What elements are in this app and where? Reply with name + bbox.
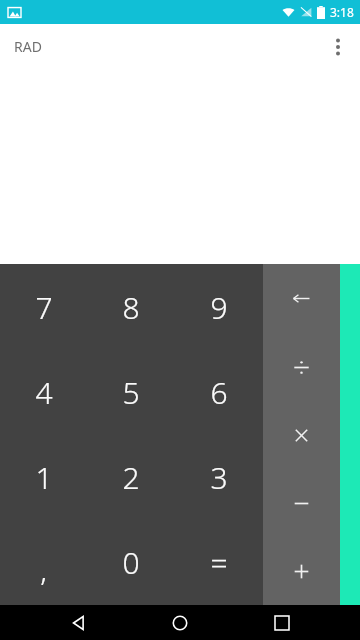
staticText: 5 <box>122 372 140 413</box>
staticText: 3 <box>210 457 228 498</box>
button[interactable]: More options <box>316 25 360 69</box>
button[interactable]: = <box>175 520 263 605</box>
button[interactable]: Divide <box>263 333 340 401</box>
button[interactable]: RAD <box>0 31 56 62</box>
staticText: 0 <box>122 542 140 583</box>
staticText: 2 <box>122 457 140 498</box>
staticText: , <box>40 549 47 590</box>
button[interactable]: 7 <box>0 264 87 350</box>
button[interactable]: 0 <box>87 520 175 605</box>
button[interactable]: 2 <box>87 435 175 520</box>
staticText: RAD <box>14 37 42 56</box>
button[interactable]: , <box>0 520 87 605</box>
button[interactable]: Home <box>156 605 204 640</box>
button[interactable]: 1 <box>0 435 87 520</box>
button[interactable]: Minus <box>263 469 340 537</box>
button[interactable]: Backspace <box>263 264 340 333</box>
staticText: 3:18 <box>330 4 354 20</box>
staticText: 8 <box>122 287 140 328</box>
staticText: 6 <box>210 372 228 413</box>
staticText: 7 <box>35 287 53 328</box>
button[interactable]: Multiply <box>263 401 340 469</box>
button[interactable]: 3 <box>175 435 263 520</box>
button[interactable]: 8 <box>87 264 175 350</box>
staticText: = <box>210 542 228 583</box>
button[interactable]: 4 <box>0 350 87 435</box>
button[interactable]: Plus <box>263 537 340 605</box>
button[interactable]: 6 <box>175 350 263 435</box>
staticText: 4 <box>35 372 53 413</box>
button[interactable]: Back <box>54 605 102 640</box>
button[interactable]: 5 <box>87 350 175 435</box>
staticText: 1 <box>35 457 53 498</box>
button[interactable]: 9 <box>175 264 263 350</box>
staticText: 9 <box>210 287 228 328</box>
button[interactable]: Recent apps <box>258 605 306 640</box>
